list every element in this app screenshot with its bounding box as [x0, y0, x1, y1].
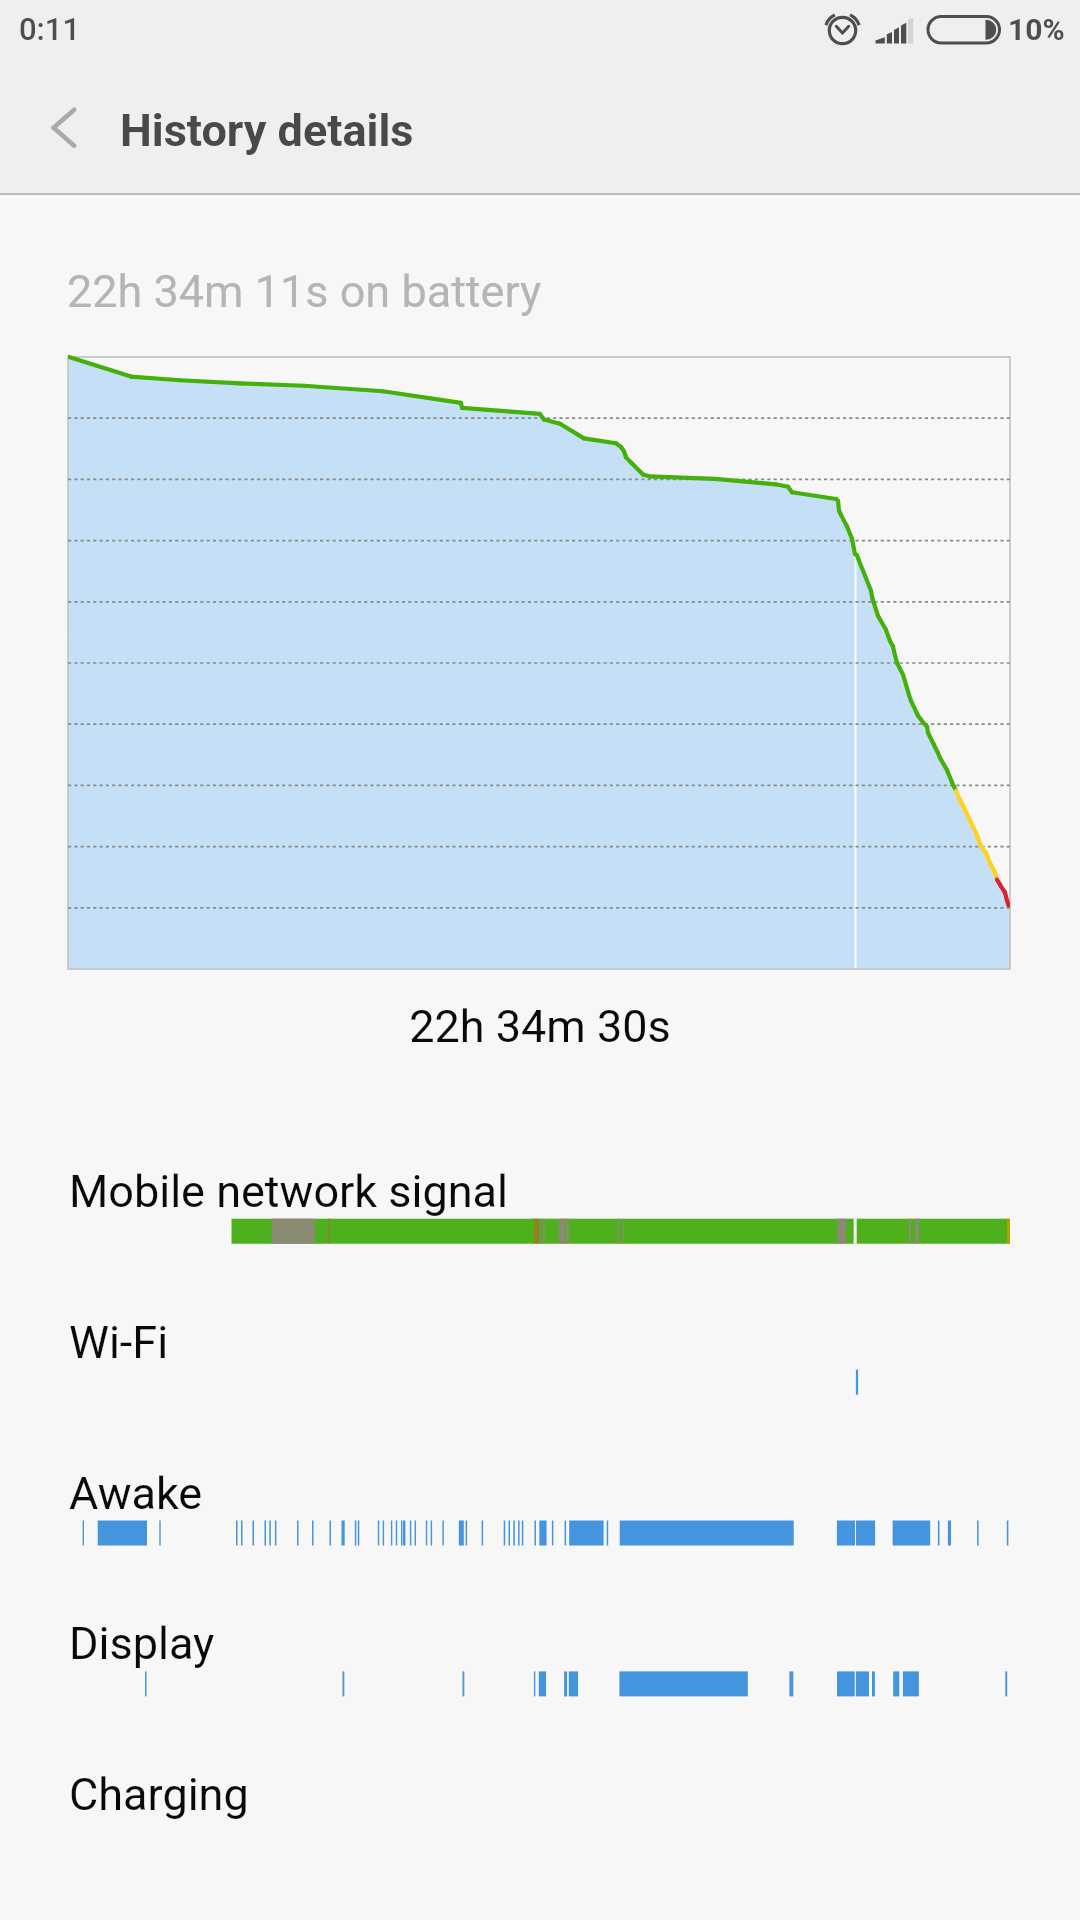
staticText: History details — [120, 104, 414, 157]
staticText: Charging — [69, 1768, 249, 1821]
button[interactable]: Back — [30, 92, 106, 168]
staticText: Display — [69, 1617, 215, 1670]
staticText: 22h 34m 30s — [0, 1000, 1080, 1053]
staticText: Wi-Fi — [69, 1316, 169, 1369]
staticText: 22h 34m 11s on battery — [67, 265, 542, 318]
staticText: Mobile network signal — [69, 1165, 508, 1218]
staticText: 10% — [1008, 12, 1065, 47]
staticText: 0:11 — [19, 11, 81, 47]
staticText: Awake — [69, 1467, 203, 1520]
